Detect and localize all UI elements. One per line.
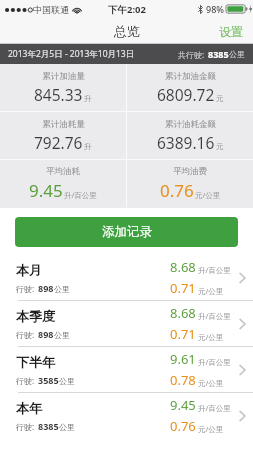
staticText: 0.78 <box>170 371 196 389</box>
other: 查看详情 <box>231 255 253 300</box>
button[interactable]: 本月 <box>0 255 253 300</box>
button[interactable]: 下半年 <box>0 347 253 392</box>
staticText: 本年 <box>16 400 42 416</box>
staticText: 中国联通 <box>33 4 69 15</box>
staticText: 2013年2月5日 - 2013年10月13日 <box>8 48 135 60</box>
staticText: 行驶: <box>16 375 35 386</box>
staticText: 845.33 <box>34 84 83 105</box>
staticText: 添加记录 <box>102 224 152 240</box>
staticText: 8385 <box>208 48 229 60</box>
staticText: 本月 <box>16 262 42 278</box>
other: 查看详情 <box>231 393 253 438</box>
staticText: 8.68 <box>170 258 196 276</box>
staticText: 升 <box>84 142 92 151</box>
staticText: 升/百公里 <box>198 265 231 275</box>
staticText: 平均油费 <box>173 166 207 177</box>
staticText: 共行驶: <box>178 49 205 60</box>
staticText: 792.76 <box>34 132 83 153</box>
staticText: 0.76 <box>170 417 196 435</box>
staticText: 累计加油金额 <box>165 71 216 82</box>
staticText: 累计油耗金额 <box>165 119 216 130</box>
staticText: 累计加油量 <box>42 71 85 82</box>
staticText: 本季度 <box>16 308 55 324</box>
staticText: 9.45 <box>170 396 196 414</box>
staticText: 9.45 <box>29 179 63 202</box>
staticText: 设置 <box>219 24 243 39</box>
other: 查看详情 <box>231 347 253 392</box>
staticText: 平均油耗 <box>46 166 80 177</box>
staticText: 总览 <box>114 23 140 39</box>
staticText: 升 <box>84 94 92 103</box>
staticText: 行驶: <box>16 421 35 432</box>
staticText: 8.68 <box>170 304 196 322</box>
staticText: 下半年 <box>16 354 55 370</box>
staticText: 9.61 <box>170 350 196 368</box>
staticText: 元/公里 <box>198 378 224 388</box>
button[interactable]: 设置 <box>209 20 253 43</box>
staticText: 0.76 <box>160 179 194 202</box>
staticText: 升/百公里 <box>198 357 231 367</box>
staticText: 行驶: <box>16 283 35 294</box>
staticText: 6389.16 <box>157 132 215 153</box>
staticText: 元/公里 <box>198 332 224 342</box>
button[interactable]: 本季度 <box>0 301 253 346</box>
staticText: 8385 <box>38 420 59 432</box>
staticText: 公里 <box>54 330 70 340</box>
button[interactable]: 本年 <box>0 393 253 438</box>
staticText: 0.71 <box>170 279 196 297</box>
staticText: 升/百公里 <box>64 190 97 200</box>
staticText: 元/公里 <box>198 286 224 296</box>
staticText: 公里 <box>54 284 70 294</box>
button[interactable]: 添加记录 <box>15 217 238 247</box>
staticText: 898 <box>38 282 54 294</box>
staticText: 公里 <box>229 49 245 59</box>
staticText: 6809.72 <box>157 84 215 105</box>
staticText: 累计油耗量 <box>42 119 85 130</box>
staticText: 行驶: <box>16 329 35 340</box>
staticText: 98% <box>206 3 224 15</box>
staticText: 升/百公里 <box>198 403 231 413</box>
staticText: 下午2:02 <box>108 3 146 16</box>
staticText: 898 <box>38 328 54 340</box>
staticText: 元 <box>216 94 224 103</box>
staticText: 元/公里 <box>195 190 221 200</box>
staticText: 元 <box>216 142 224 151</box>
staticText: 公里 <box>59 376 75 386</box>
staticText: 公里 <box>59 422 75 432</box>
staticText: 3585 <box>38 374 59 386</box>
other: 查看详情 <box>231 301 253 346</box>
staticText: 0.71 <box>170 325 196 343</box>
staticText: 升/百公里 <box>198 311 231 321</box>
staticText: 元/公里 <box>198 424 224 434</box>
